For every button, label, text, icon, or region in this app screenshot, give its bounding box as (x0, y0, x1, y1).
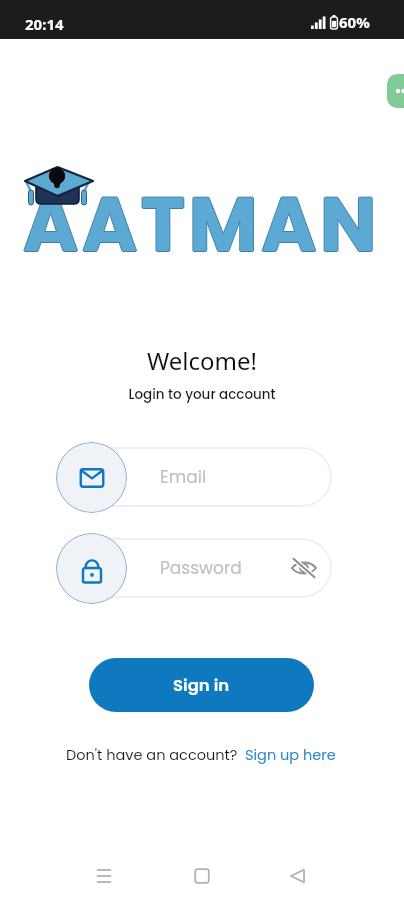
button[interactable]: Back (276, 854, 320, 898)
button[interactable]: Email (56, 442, 127, 513)
staticText: Welcome! (0, 344, 404, 377)
button[interactable]: Password (56, 533, 127, 604)
button[interactable]: Sign in (89, 658, 314, 712)
staticText: Password (160, 556, 242, 580)
staticText: 60% (339, 12, 370, 32)
staticText: Email (160, 465, 207, 489)
staticText: Sign in (173, 674, 230, 697)
staticText: Login to your account (0, 385, 404, 404)
button[interactable]: More options (387, 74, 404, 108)
button[interactable]: Recent apps (82, 854, 126, 898)
staticText: AATMAN (23, 172, 381, 277)
staticText: 20:14 (25, 14, 64, 34)
staticText: AATMAN (22, 172, 380, 277)
button[interactable]: Password (56, 538, 332, 598)
staticText: Sign up here (245, 745, 336, 765)
staticText: AATMAN (23, 171, 381, 276)
staticText: AATMAN (23, 173, 381, 278)
button[interactable]: Email (56, 447, 332, 507)
button[interactable]: Home (180, 854, 224, 898)
staticText: AATMAN (24, 172, 382, 277)
button[interactable]: Sign up here (243, 745, 338, 765)
staticText: Don't have an account? (66, 745, 238, 765)
button[interactable]: Show password (288, 552, 320, 584)
